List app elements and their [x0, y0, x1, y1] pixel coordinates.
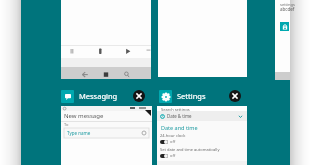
- staticText: settings: [280, 2, 295, 7]
- staticText: abcdef: [280, 6, 295, 12]
- staticText: Messaging: [79, 91, 118, 101]
- button[interactable]: Close Messaging: [133, 90, 145, 102]
- button[interactable]: Messaging: [61, 86, 152, 106]
- staticText: off: [170, 139, 176, 144]
- staticText: 24-hour clock: [160, 133, 186, 138]
- staticText: Set date and time automatically: [160, 147, 220, 152]
- button[interactable]: off: [160, 153, 176, 158]
- button[interactable]: off: [160, 139, 176, 144]
- staticText: off: [170, 153, 176, 158]
- staticText: Type name: [67, 130, 91, 136]
- button[interactable]: Date & time: [157, 111, 247, 121]
- staticText: Date & time: [167, 113, 192, 119]
- staticText: Settings: [177, 91, 206, 101]
- button[interactable]: Type name: [64, 128, 149, 138]
- staticText: Date and time: [161, 124, 198, 131]
- staticText: To: [64, 122, 69, 127]
- staticText: Search settings: [161, 107, 190, 112]
- button[interactable]: Search settings: [157, 106, 247, 112]
- staticText: New message: [64, 112, 104, 120]
- button[interactable]: Close Settings: [229, 90, 241, 102]
- button[interactable]: App: [280, 22, 289, 31]
- button[interactable]: Settings: [157, 86, 247, 106]
